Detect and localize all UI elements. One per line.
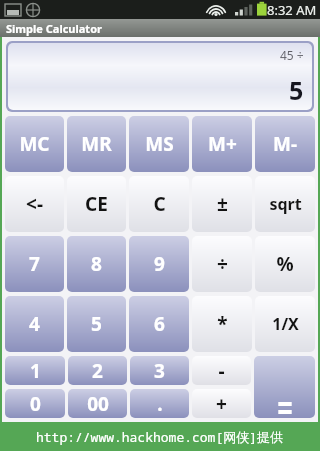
button[interactable]: ±: [192, 176, 252, 232]
staticText: 00: [87, 391, 109, 417]
staticText: 8:32 AM: [267, 1, 317, 19]
staticText: +: [216, 391, 227, 417]
button[interactable]: MC: [5, 116, 64, 172]
button[interactable]: MR: [67, 116, 126, 172]
staticText: 1: [30, 358, 41, 384]
button[interactable]: *: [192, 296, 252, 352]
button[interactable]: 6: [129, 296, 189, 352]
staticText: 2: [92, 358, 103, 384]
staticText: MS: [145, 131, 174, 157]
staticText: 5: [289, 73, 304, 107]
staticText: MR: [81, 131, 112, 157]
staticText: %: [276, 251, 294, 277]
staticText: http://www.hackhome.com[网侠]提供: [36, 428, 284, 446]
staticText: 9: [154, 251, 165, 277]
staticText: ±: [217, 191, 228, 217]
button[interactable]: .: [130, 389, 189, 418]
button[interactable]: CE: [67, 176, 126, 232]
staticText: 4: [29, 311, 40, 337]
button[interactable]: sqrt: [255, 176, 315, 232]
staticText: C: [153, 191, 166, 217]
button[interactable]: M-: [255, 116, 315, 172]
staticText: *: [217, 311, 228, 337]
staticText: sqrt: [269, 193, 302, 215]
button[interactable]: MS: [129, 116, 189, 172]
button[interactable]: Equals: [254, 356, 315, 418]
button[interactable]: -: [192, 356, 251, 385]
button[interactable]: +: [192, 389, 251, 418]
button[interactable]: 5: [67, 296, 126, 352]
staticText: .: [157, 391, 163, 417]
staticText: MC: [19, 131, 50, 157]
button[interactable]: M+: [192, 116, 252, 172]
staticText: <-: [26, 191, 43, 217]
button[interactable]: 00: [68, 389, 127, 418]
button[interactable]: 1/X: [255, 296, 315, 352]
staticText: 7: [29, 251, 40, 277]
staticText: 1/X: [272, 313, 299, 335]
staticText: 0: [30, 391, 41, 417]
staticText: 45 ÷: [280, 47, 304, 63]
button[interactable]: 8: [67, 236, 126, 292]
button[interactable]: <-: [5, 176, 64, 232]
staticText: M+: [208, 131, 237, 157]
staticText: ÷: [217, 251, 228, 277]
button[interactable]: 7: [5, 236, 64, 292]
staticText: 8: [91, 251, 102, 277]
button[interactable]: 1: [5, 356, 65, 385]
button[interactable]: %: [255, 236, 315, 292]
staticText: Simple Calculator: [6, 21, 102, 36]
staticText: CE: [85, 191, 108, 217]
button[interactable]: 9: [129, 236, 189, 292]
button[interactable]: 0: [5, 389, 65, 418]
staticText: 6: [154, 311, 165, 337]
staticText: -: [218, 358, 225, 384]
button[interactable]: 2: [68, 356, 127, 385]
button[interactable]: C: [129, 176, 189, 232]
staticText: 3: [154, 358, 165, 384]
button[interactable]: ÷: [192, 236, 252, 292]
button[interactable]: 4: [5, 296, 64, 352]
button[interactable]: 3: [130, 356, 189, 385]
staticText: 5: [91, 311, 102, 337]
staticText: M-: [273, 131, 297, 157]
